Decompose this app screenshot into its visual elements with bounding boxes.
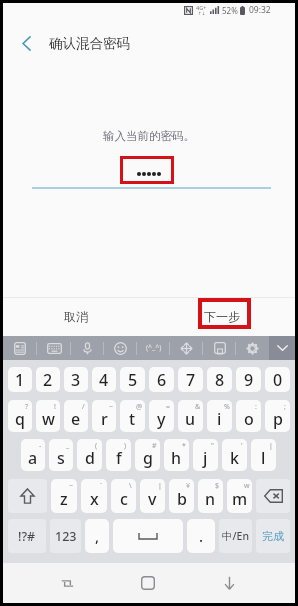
button[interactable]: 3 bbox=[64, 367, 88, 392]
button[interactable]: Space bbox=[113, 519, 183, 553]
button[interactable]: g bbox=[135, 439, 160, 471]
button[interactable]: 完成 bbox=[256, 519, 290, 553]
button[interactable]: w bbox=[36, 400, 60, 432]
button[interactable]: 9 bbox=[236, 367, 261, 392]
button[interactable]: kb bbox=[37, 336, 71, 360]
staticText: w bbox=[42, 408, 55, 430]
staticText: # bbox=[152, 441, 157, 451]
button[interactable]: l bbox=[251, 439, 276, 471]
button[interactable]: c bbox=[111, 479, 136, 513]
button[interactable]: gear bbox=[236, 336, 269, 360]
button[interactable]: i bbox=[207, 400, 232, 432]
button[interactable]: !?# bbox=[8, 519, 46, 553]
button[interactable]: save bbox=[203, 336, 236, 360]
staticText: k bbox=[230, 447, 239, 469]
staticText: h bbox=[171, 447, 182, 469]
staticText: 中/En bbox=[222, 529, 249, 543]
staticText: ? bbox=[25, 402, 29, 412]
button[interactable]: 8 bbox=[207, 367, 232, 392]
button[interactable]: x bbox=[81, 479, 107, 513]
staticText: m bbox=[232, 488, 248, 510]
button[interactable]: face bbox=[137, 336, 170, 360]
button[interactable]: Back bbox=[211, 563, 247, 603]
staticText: @ bbox=[136, 402, 143, 412]
staticText: 确认混合密码 bbox=[49, 35, 130, 52]
button[interactable]: 7 bbox=[178, 367, 203, 392]
button[interactable]: Home bbox=[130, 563, 166, 603]
button[interactable]: s bbox=[49, 439, 73, 471]
button[interactable]: q bbox=[8, 400, 32, 432]
staticText: \ bbox=[129, 481, 132, 491]
button[interactable]: j bbox=[193, 439, 218, 471]
button[interactable]: 6 bbox=[149, 367, 174, 392]
button[interactable]: p bbox=[265, 400, 290, 432]
button[interactable]: 取消 bbox=[3, 298, 149, 336]
staticText: l bbox=[261, 447, 266, 469]
button[interactable]: 中/En bbox=[219, 519, 252, 553]
staticText: s bbox=[57, 447, 65, 469]
staticText: ( bbox=[95, 441, 98, 451]
button[interactable]: k bbox=[222, 439, 247, 471]
button[interactable]: n bbox=[198, 479, 223, 513]
button[interactable]: r bbox=[92, 400, 116, 432]
staticText: ` bbox=[100, 481, 102, 491]
staticText: b bbox=[177, 488, 187, 510]
button[interactable]: m bbox=[227, 479, 252, 513]
staticText: $ bbox=[215, 481, 220, 491]
button[interactable]: f bbox=[106, 439, 131, 471]
staticText: q bbox=[15, 408, 25, 430]
staticText: : bbox=[255, 402, 257, 412]
button[interactable]: , bbox=[85, 519, 109, 553]
button[interactable]: 下一步 bbox=[149, 298, 295, 336]
button[interactable]: y bbox=[149, 400, 174, 432]
button[interactable]: backspace bbox=[256, 479, 290, 513]
button[interactable]: e bbox=[64, 400, 88, 432]
staticText: 下一步 bbox=[204, 309, 240, 324]
button[interactable]: emoji bbox=[104, 336, 137, 360]
button[interactable]: 1 bbox=[8, 367, 32, 392]
button[interactable]: 4 bbox=[92, 367, 116, 392]
button[interactable]: a bbox=[21, 439, 45, 471]
button[interactable]: b bbox=[169, 479, 194, 513]
button[interactable]: d bbox=[77, 439, 102, 471]
button[interactable]: mic bbox=[71, 336, 104, 360]
button[interactable]: z bbox=[51, 479, 77, 513]
staticText: ~ bbox=[109, 402, 114, 412]
button[interactable]: 123 bbox=[50, 519, 81, 553]
staticText: ) bbox=[124, 441, 127, 451]
staticText: _ bbox=[66, 441, 70, 451]
staticText: a bbox=[28, 447, 38, 469]
staticText: ! bbox=[54, 402, 56, 412]
button[interactable]: Back bbox=[10, 23, 42, 63]
button[interactable]: t bbox=[120, 400, 145, 432]
staticText: f bbox=[116, 447, 122, 469]
staticText: 输入当前的密码。 bbox=[3, 129, 295, 143]
staticText: = bbox=[166, 402, 171, 412]
button[interactable]: u bbox=[178, 400, 203, 432]
staticText: 完成 bbox=[262, 529, 284, 543]
button[interactable]: panel bbox=[3, 336, 37, 360]
button[interactable]: . bbox=[187, 519, 215, 553]
staticText: !?# bbox=[18, 528, 36, 545]
staticText: * bbox=[182, 441, 186, 451]
staticText: n bbox=[205, 488, 216, 510]
button[interactable]: 2 bbox=[36, 367, 60, 392]
button[interactable]: v bbox=[140, 479, 165, 513]
staticText: - bbox=[39, 441, 42, 451]
button[interactable]: h bbox=[164, 439, 189, 471]
button[interactable]: Recents bbox=[49, 563, 85, 603]
button[interactable]: shift bbox=[8, 479, 47, 513]
staticText: 2 bbox=[43, 369, 53, 391]
button[interactable]: 5 bbox=[120, 367, 145, 392]
button[interactable]: move bbox=[170, 336, 203, 360]
staticText: 123 bbox=[55, 528, 77, 545]
staticText: 0 bbox=[273, 369, 283, 391]
button[interactable]: 0 bbox=[265, 367, 290, 392]
staticText: p bbox=[273, 408, 283, 430]
staticText: w bbox=[244, 481, 250, 491]
staticText: 09:32 bbox=[249, 4, 271, 16]
button[interactable]: o bbox=[236, 400, 261, 432]
staticText: | bbox=[269, 441, 273, 451]
button[interactable]: Hide keyboard bbox=[269, 336, 295, 360]
staticText: e bbox=[71, 408, 81, 430]
